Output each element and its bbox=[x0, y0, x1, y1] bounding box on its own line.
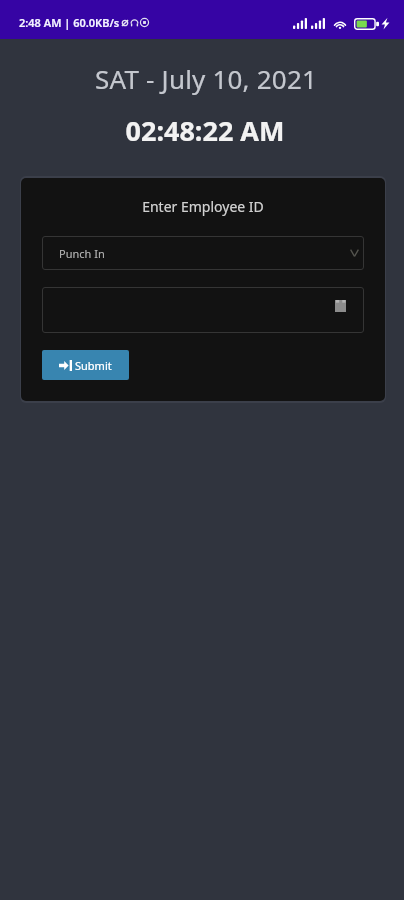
staticText: Submit bbox=[75, 358, 112, 373]
button[interactable]: Punch In bbox=[42, 236, 364, 270]
other: Expand bbox=[350, 249, 359, 257]
staticText: SAT - July 10, 2021 bbox=[4, 61, 404, 96]
button[interactable]: Submit bbox=[42, 350, 129, 380]
staticText: 2:48 AM | 60.0KB/s bbox=[19, 15, 120, 30]
staticText: 02:48:22 AM bbox=[3, 112, 404, 149]
staticText: Punch In bbox=[59, 246, 105, 261]
other: Show image bbox=[335, 300, 346, 312]
staticText: Enter Employee ID bbox=[21, 197, 385, 216]
button[interactable]: Show image bbox=[42, 287, 364, 333]
